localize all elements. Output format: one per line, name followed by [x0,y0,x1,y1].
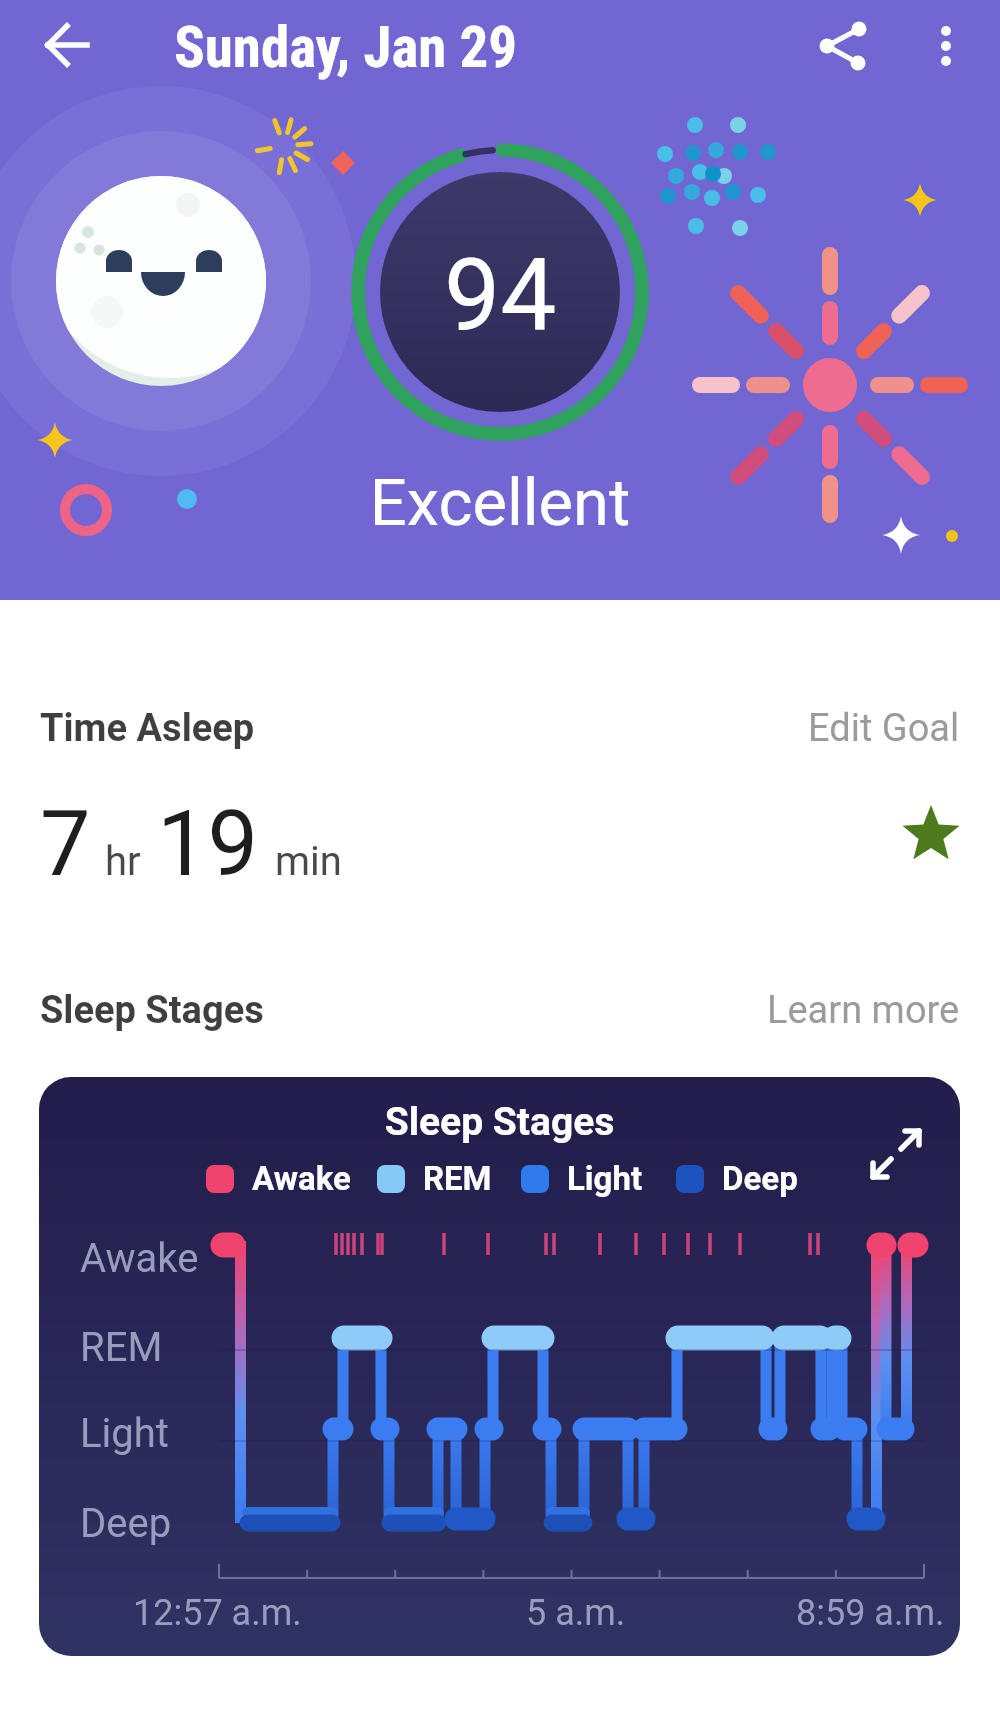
button[interactable] [805,8,881,84]
button[interactable]: Edit Goal [808,706,960,751]
staticText: hr [105,838,141,885]
button[interactable]: Learn more [767,988,960,1033]
staticText: 19 [157,792,259,897]
staticText: Sunday, Jan 29 [174,14,518,81]
staticText: Deep [722,1159,798,1198]
staticText: Light [80,1410,169,1457]
staticText: 94 [444,237,557,354]
staticText: 7 [40,792,91,897]
staticText: 5 a.m. [526,1592,626,1634]
staticText: Awake [252,1159,351,1198]
staticText: Awake [80,1235,199,1282]
staticText: Sleep Stages [40,988,264,1033]
staticText: min [275,838,342,885]
staticText: REM [80,1324,163,1371]
button[interactable] [867,1125,927,1185]
staticText: Deep [80,1500,172,1547]
staticText: REM [423,1159,492,1198]
staticText: Sleep Stages [39,1099,960,1145]
button[interactable]: Sleep Stages [39,1077,960,1656]
button[interactable] [912,8,980,84]
button[interactable] [901,805,961,865]
staticText: 8:59 a.m. [796,1592,945,1634]
staticText: Light [567,1159,643,1198]
staticText: Time Asleep [40,706,255,751]
staticText: 12:57 a.m. [133,1592,302,1634]
staticText: Excellent [0,465,1000,541]
button[interactable] [28,6,108,86]
